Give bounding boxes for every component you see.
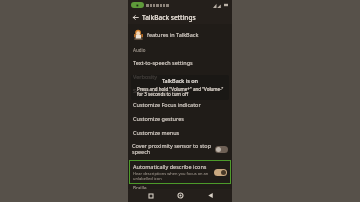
button[interactable]: Customize menus [128, 125, 232, 139]
staticText: Customize menus [133, 129, 180, 136]
staticText: TalkBack settings [142, 13, 196, 22]
button[interactable]: Cover proximity sensor to stop speech [128, 139, 232, 159]
button[interactable]: Customize gestures [128, 111, 232, 125]
button[interactable]: Back [128, 10, 142, 24]
button[interactable]: Home [173, 189, 187, 202]
button[interactable]: Recent apps [144, 189, 158, 202]
button[interactable]: Back [203, 189, 217, 202]
staticText: Press and hold "Volume+" and "Volume-" f… [137, 86, 224, 98]
staticText: TalkBack is on [162, 77, 198, 84]
other: Toggle [215, 146, 228, 153]
button[interactable]: Sound and vibration [128, 83, 232, 97]
button[interactable]: Automatically describe icons [129, 160, 231, 184]
staticText: Verbosity [133, 73, 158, 80]
button[interactable]: Verbosity [128, 69, 232, 83]
button[interactable]: Text-to-speech settings [128, 55, 232, 69]
staticText: Sound and vibration [133, 87, 186, 94]
staticText: Customize gestures [133, 115, 184, 122]
staticText: Braille [133, 185, 147, 189]
staticText: Customize Focus indicator [133, 101, 201, 108]
other: Toggle [214, 169, 227, 176]
staticText: Hear descriptions when you focus on an u… [133, 171, 211, 181]
staticText: Cover proximity sensor to stop speech [132, 142, 212, 156]
staticText: features in TalkBack [147, 31, 199, 38]
button[interactable]: Customize Focus indicator [128, 97, 232, 111]
staticText: Audio [133, 47, 146, 53]
staticText: Automatically describe icons [133, 163, 207, 170]
button[interactable]: features in TalkBack [128, 24, 232, 44]
staticText: Text-to-speech settings [133, 59, 193, 66]
